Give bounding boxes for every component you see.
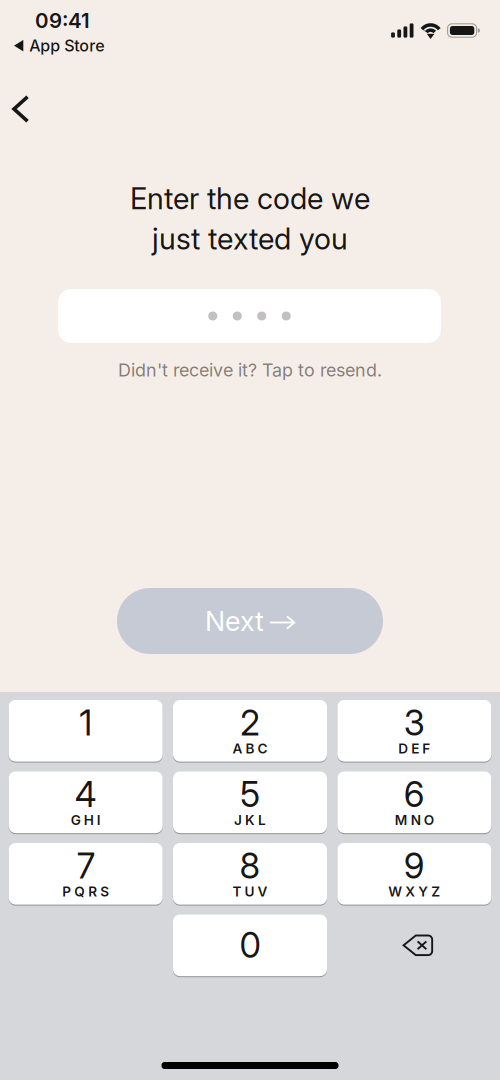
staticText: T U V [232,883,267,900]
button[interactable]: 0 [173,914,327,976]
button[interactable]: 8 [173,843,327,905]
button[interactable]: Next [117,588,383,654]
staticText: G H I [71,812,101,828]
staticText: just texted you [152,221,348,257]
button[interactable]: 2 [173,700,327,762]
staticText: 0 [239,924,260,966]
staticText: Next [205,604,264,638]
staticText: 7 [77,845,95,887]
button[interactable]: Didn't receive it? Tap to resend. [0,358,500,382]
staticText: Didn't receive it? Tap to resend. [118,359,382,381]
button[interactable]: 7 [9,843,163,905]
staticText: P Q R S [62,883,109,900]
button[interactable]: 6 [337,771,491,833]
button[interactable]: 4 [9,771,163,833]
staticText: 3 [404,702,425,744]
staticText: M N O [395,812,434,828]
staticText: 8 [239,845,260,887]
button[interactable] [58,289,441,343]
staticText: 9 [404,845,425,887]
staticText: 2 [240,702,260,744]
button[interactable]: Delete [337,914,491,976]
button[interactable]: 5 [173,771,327,833]
button[interactable]: 3 [337,700,491,762]
staticText: 1 [79,702,92,744]
staticText: A B C [232,740,267,757]
staticText: D E F [398,740,430,757]
staticText: Enter the code we [130,181,370,216]
button[interactable]: 1 [9,700,163,762]
staticText: W X Y Z [388,883,440,900]
staticText: 6 [404,773,425,815]
button[interactable]: 9 [337,843,491,905]
staticText: App Store [29,36,104,55]
staticText: J K L [234,812,266,828]
staticText: 5 [240,773,260,815]
staticText: 4 [75,773,97,815]
button[interactable]: Back [0,83,43,135]
staticText: 09:41 [35,8,90,33]
